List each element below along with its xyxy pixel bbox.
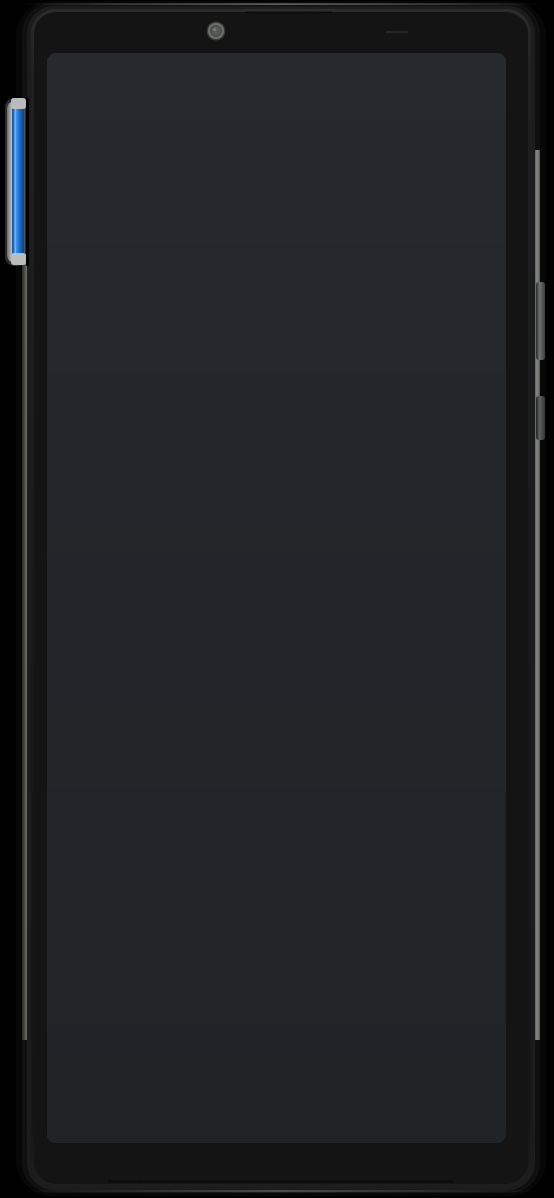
button[interactable]: Phone device, screen off [0,0,554,1198]
